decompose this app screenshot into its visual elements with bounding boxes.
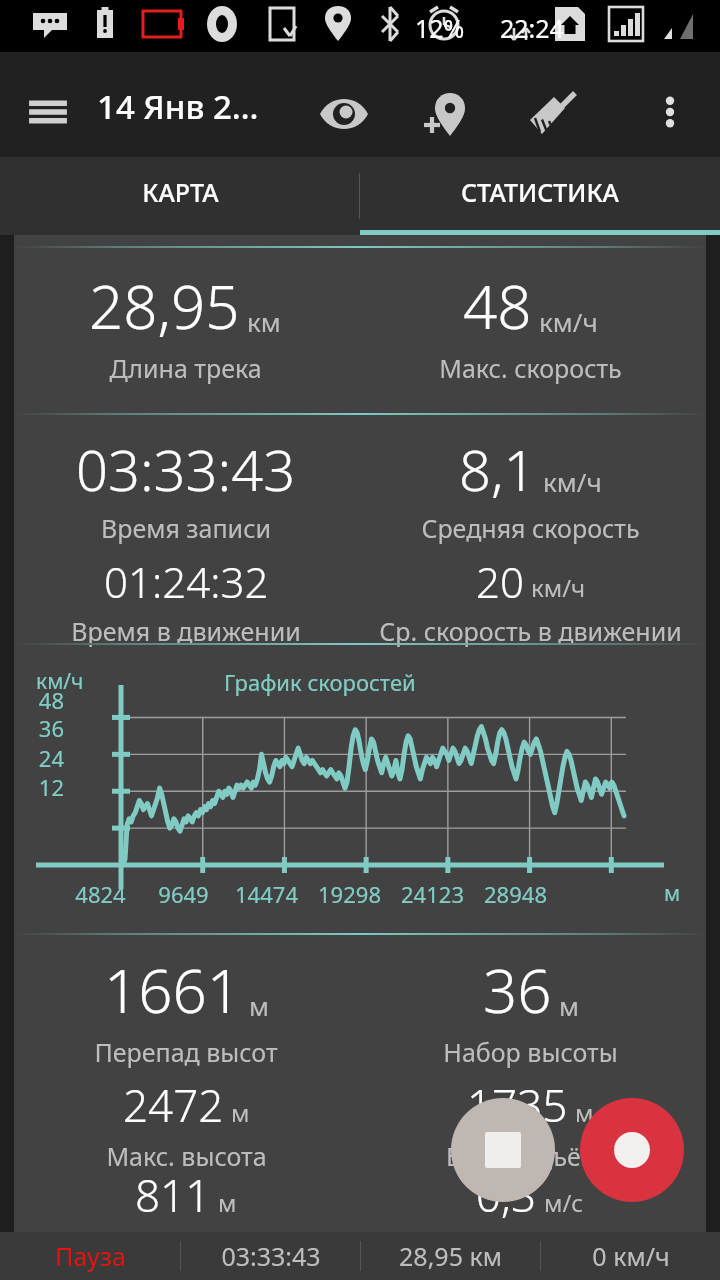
- staticText: 1735: [467, 1075, 568, 1135]
- staticText: 0 км/ч: [592, 1239, 670, 1273]
- staticText: 28,95: [89, 265, 240, 347]
- button[interactable]: Пауза: [0, 1232, 180, 1280]
- staticText: Ср. скорость в движении: [379, 614, 682, 648]
- staticText: Длина трека: [109, 351, 262, 385]
- staticText: 4824: [75, 879, 126, 909]
- staticText: 9649: [158, 879, 209, 909]
- button[interactable]: 28,95: [5, 265, 365, 385]
- staticText: СТАТИСТИКА: [461, 175, 619, 209]
- staticText: 36: [38, 713, 64, 743]
- button[interactable]: 03:33:43: [6, 431, 366, 545]
- staticText: 2472: [123, 1075, 224, 1135]
- staticText: м: [249, 988, 269, 1023]
- staticText: 28948: [484, 879, 547, 909]
- staticText: КАРТА: [142, 175, 219, 209]
- staticText: Пауза: [55, 1239, 126, 1273]
- staticText: Макс. скорость: [439, 351, 622, 385]
- staticText: 24: [38, 743, 64, 773]
- button[interactable]: КАРТА: [0, 157, 360, 235]
- button[interactable]: 2472: [6, 1075, 366, 1173]
- staticText: Макс. высота: [106, 1139, 267, 1173]
- button[interactable]: Show track: [308, 78, 380, 150]
- button[interactable]: Stop recording: [451, 1098, 555, 1202]
- button[interactable]: More options: [636, 78, 704, 146]
- button[interactable]: 28,95 км: [361, 1232, 540, 1280]
- staticText: 48: [463, 265, 532, 347]
- staticText: Время записи: [101, 511, 271, 545]
- staticText: Перепад высот: [94, 1035, 278, 1069]
- staticText: 28,95 км: [399, 1239, 502, 1273]
- staticText: Выс. подъёма: [446, 1139, 614, 1173]
- button[interactable]: Open navigation menu: [14, 78, 82, 146]
- staticText: км/ч: [36, 667, 84, 696]
- staticText: 19298: [318, 879, 381, 909]
- staticText: 01:24:32: [104, 553, 269, 610]
- button[interactable]: 0 км/ч: [541, 1232, 720, 1280]
- staticText: 811: [135, 1165, 211, 1225]
- button[interactable]: СТАТИСТИКА: [360, 157, 720, 235]
- staticText: График скоростей: [224, 667, 416, 697]
- staticText: м: [231, 1096, 250, 1129]
- staticText: км/ч: [531, 571, 586, 604]
- staticText: 24123: [401, 879, 464, 909]
- staticText: м: [559, 988, 579, 1023]
- staticText: км: [247, 304, 281, 339]
- staticText: м: [218, 1186, 237, 1219]
- staticText: км/ч: [539, 304, 598, 339]
- button[interactable]: Clear track: [514, 78, 590, 154]
- staticText: м/с: [544, 1186, 584, 1219]
- staticText: 03:33:43: [221, 1239, 321, 1273]
- staticText: 1661: [104, 949, 242, 1031]
- staticText: 20: [476, 553, 524, 610]
- button[interactable]: 48: [350, 265, 710, 385]
- staticText: 14474: [235, 879, 298, 909]
- staticText: км/ч: [543, 464, 602, 499]
- button[interactable]: 1661: [6, 949, 366, 1069]
- staticText: 22:24: [500, 11, 564, 45]
- staticText: 03:33:43: [76, 431, 296, 507]
- button[interactable]: 20: [350, 553, 710, 648]
- button[interactable]: 1735: [350, 1075, 710, 1173]
- staticText: 12: [38, 772, 64, 802]
- staticText: 12%: [415, 11, 465, 45]
- button[interactable]: 811: [6, 1165, 366, 1225]
- button[interactable]: 36: [350, 949, 710, 1069]
- button[interactable]: 8,1: [350, 431, 710, 545]
- staticText: Время в движении: [71, 614, 301, 648]
- button[interactable]: Record: [580, 1098, 684, 1202]
- staticText: 48: [38, 685, 64, 715]
- staticText: Набор высоты: [443, 1035, 618, 1069]
- button[interactable]: Add waypoint: [408, 78, 484, 154]
- staticText: 0,3: [476, 1165, 537, 1225]
- button[interactable]: 03:33:43: [181, 1232, 360, 1280]
- staticText: 36: [483, 949, 552, 1031]
- button[interactable]: 0,3: [350, 1165, 710, 1225]
- staticText: м: [664, 879, 681, 908]
- staticText: м: [575, 1096, 594, 1129]
- button[interactable]: 01:24:32: [6, 553, 366, 648]
- staticText: 8,1: [459, 431, 536, 507]
- staticText: 14 Янв 2…: [97, 84, 259, 129]
- staticText: Средняя скорость: [421, 511, 640, 545]
